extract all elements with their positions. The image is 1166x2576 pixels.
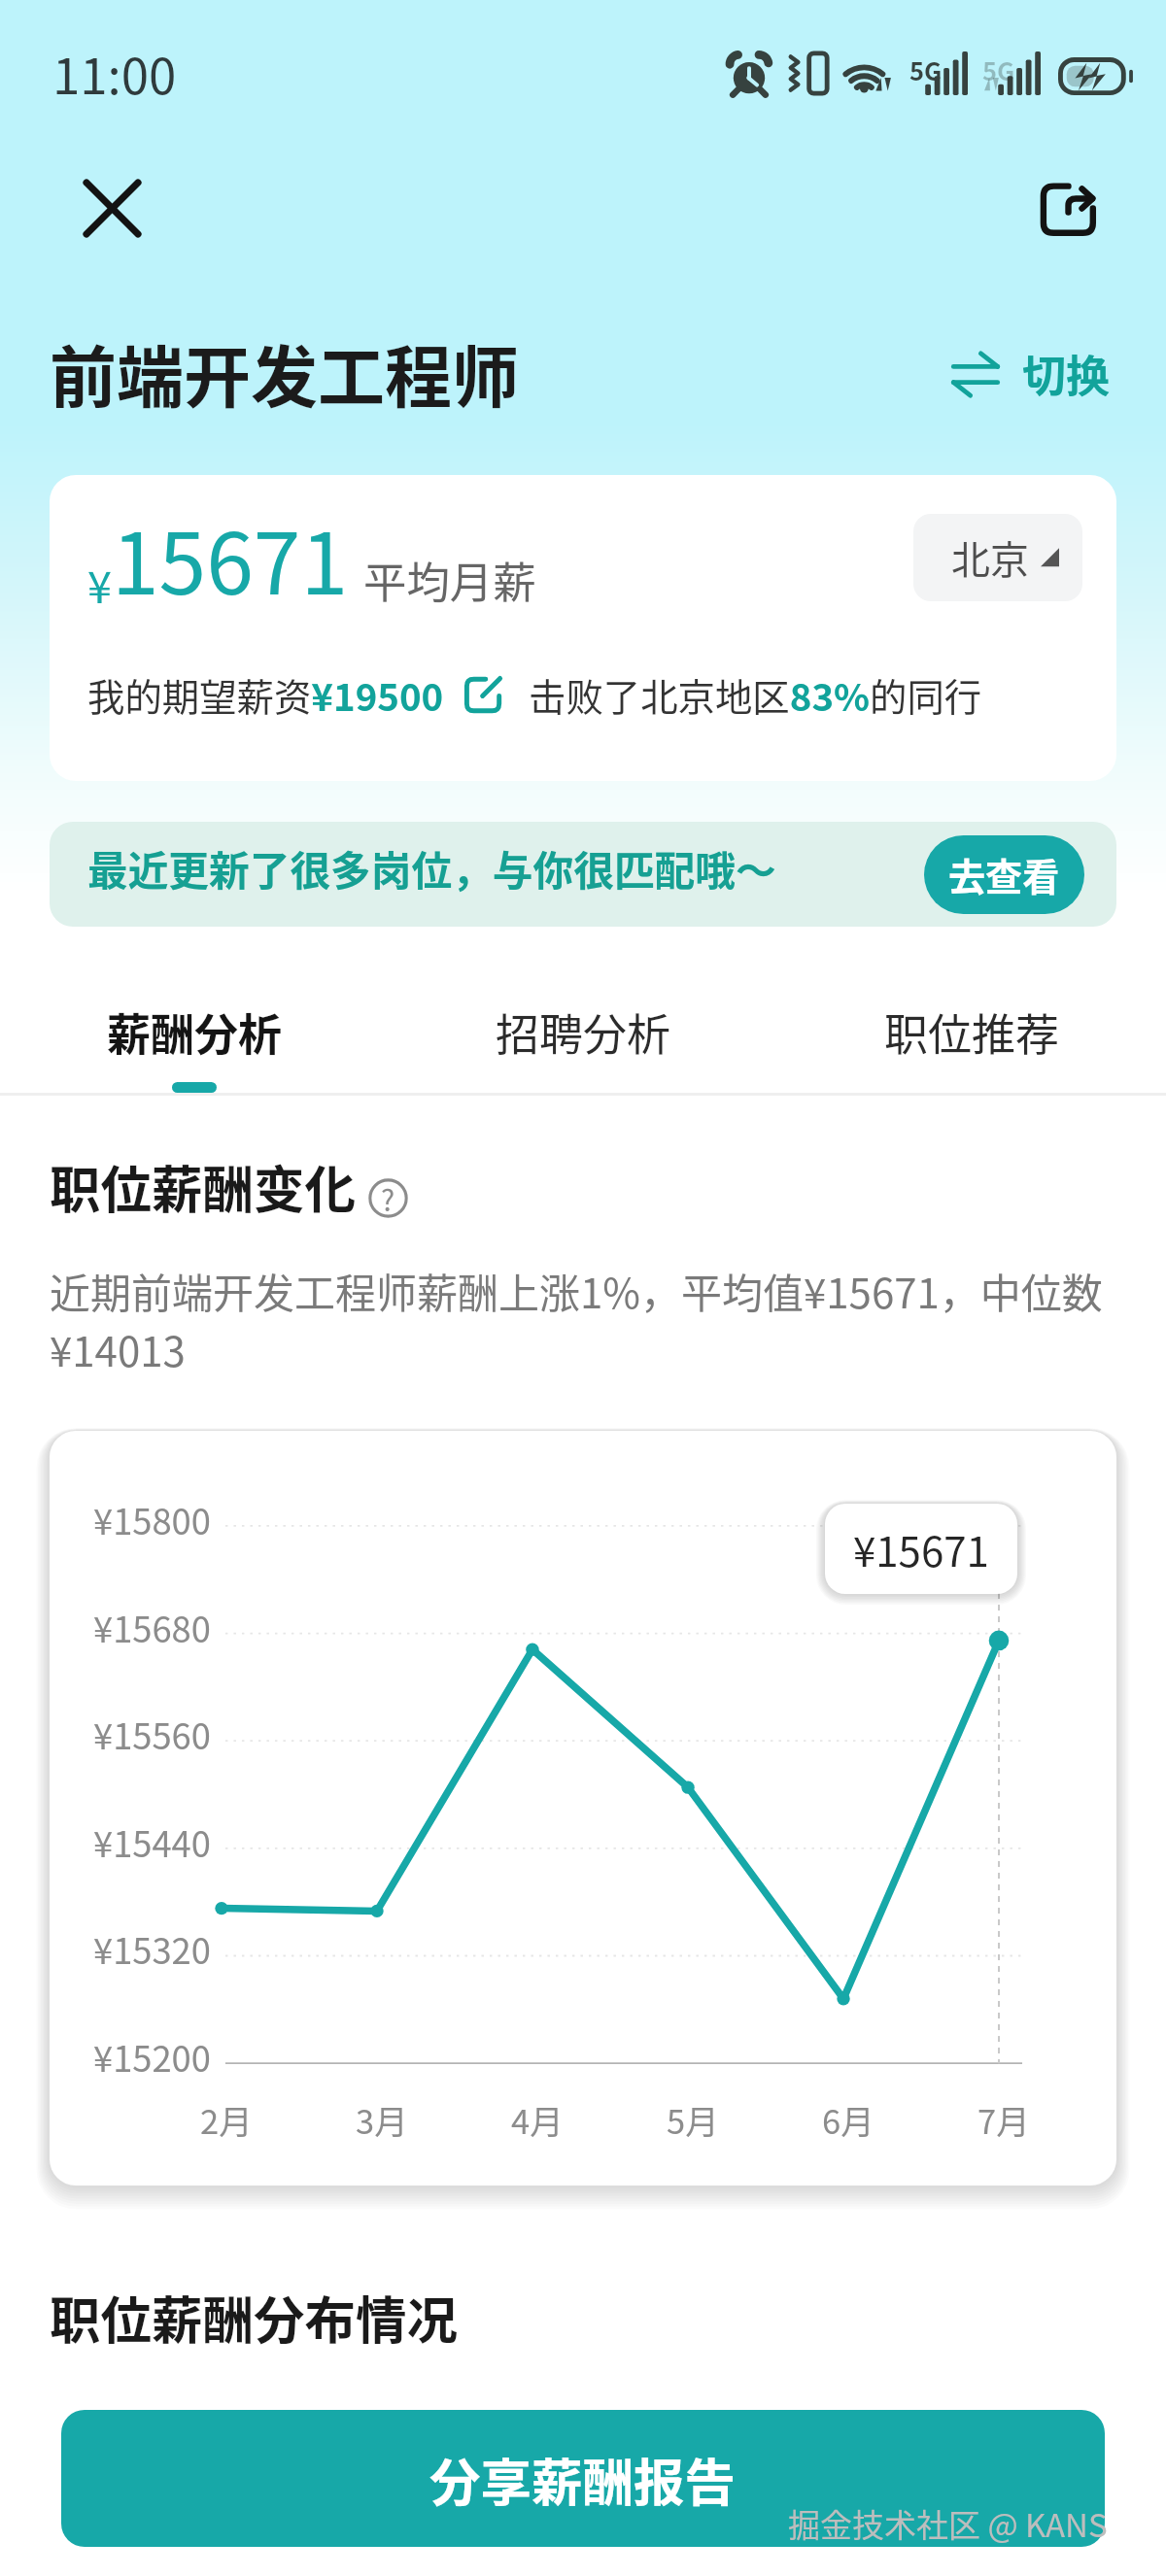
staticText: 去查看	[948, 848, 1060, 901]
staticText: 4月	[511, 2095, 564, 2144]
staticText: 切换	[1022, 342, 1111, 405]
button[interactable]: 切换	[935, 324, 1125, 423]
staticText: 近期前端开发工程师薪酬上涨1%，平均值¥15671，中位数¥14013	[50, 1261, 1149, 1378]
staticText: 最近更新了很多岗位，与你很匹配哦～	[87, 839, 776, 898]
button[interactable]: 职位推荐	[777, 962, 1166, 1093]
button[interactable]: 北京	[913, 514, 1082, 601]
staticText: 3月	[356, 2095, 408, 2144]
staticText: ?	[381, 1177, 395, 1217]
button[interactable]: Share	[1006, 146, 1131, 271]
staticText: 5G	[982, 51, 1015, 87]
button[interactable]: 最近更新了很多岗位，与你很匹配哦～	[50, 822, 1116, 927]
staticText: 5月	[667, 2095, 719, 2144]
staticText: 分享薪酬报告	[429, 2442, 737, 2516]
staticText: 5G	[909, 51, 943, 87]
staticText: ¥15560	[93, 1709, 211, 1760]
staticText: ¥15800	[93, 1494, 211, 1545]
staticText: ¥15680	[93, 1602, 211, 1653]
button[interactable]: Close	[50, 146, 175, 271]
button[interactable]: 招聘分析	[389, 962, 777, 1093]
staticText: 北京	[951, 529, 1029, 586]
staticText: ¥	[87, 553, 112, 616]
staticText: 6月	[822, 2095, 874, 2144]
button[interactable]: 分享薪酬报告	[61, 2410, 1105, 2547]
staticText: 前端开发工程师	[50, 324, 519, 422]
staticText: 职位薪酬分布情况	[50, 2280, 459, 2354]
staticText: 平均月薪	[363, 548, 536, 610]
staticText: ¥15200	[93, 2031, 211, 2083]
button[interactable]: ¥	[50, 475, 1116, 781]
staticText: 2月	[200, 2095, 253, 2144]
staticText: ¥15320	[93, 1923, 211, 1975]
button[interactable]: Edit expected salary	[462, 673, 505, 717]
button[interactable]: Help	[368, 1178, 408, 1218]
staticText: 薪酬分析	[107, 1000, 283, 1064]
button[interactable]: 去查看	[924, 835, 1084, 914]
staticText: ¥15440	[93, 1816, 211, 1868]
staticText: 我的期望薪资¥19500	[87, 667, 444, 722]
staticText: 掘金技术社区 @ KANS	[788, 2500, 1108, 2547]
button[interactable]: 薪酬分析	[0, 962, 389, 1093]
staticText: 招聘分析	[496, 1000, 671, 1064]
staticText: 职位推荐	[884, 1000, 1060, 1064]
staticText: 11:00	[52, 37, 177, 109]
staticText: 7月	[977, 2095, 1030, 2144]
staticText: 15671	[112, 495, 349, 619]
staticText: 职位薪酬变化	[50, 1149, 357, 1223]
staticText: 击败了北京地区83%的同行	[529, 667, 982, 722]
staticText: ¥15671	[853, 1519, 989, 1578]
